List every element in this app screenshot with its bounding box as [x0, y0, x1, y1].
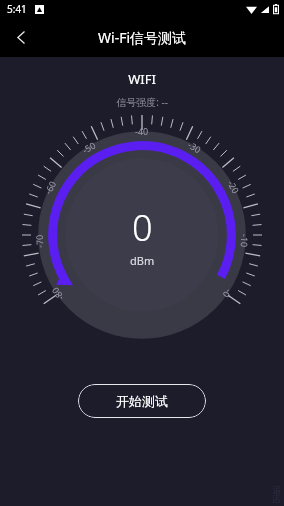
staticText: 5:41: [7, 2, 27, 16]
staticText: -80: [48, 285, 66, 303]
staticText: Wi-Fi信号测试: [98, 28, 187, 47]
staticText: 追 店: [272, 484, 281, 505]
staticText: dBm: [130, 253, 155, 268]
staticText: 开始测试: [116, 393, 168, 409]
staticText: -20: [225, 178, 242, 196]
staticText: 信号强度: --: [0, 95, 284, 109]
staticText: -40: [135, 125, 149, 137]
button[interactable]: 开始测试: [78, 384, 206, 418]
staticText: 0: [132, 203, 153, 252]
staticText: -60: [41, 178, 58, 196]
staticText: -70: [33, 234, 45, 248]
staticText: -50: [80, 138, 98, 156]
staticText: WIFI: [0, 70, 284, 88]
staticText: -0: [220, 287, 235, 301]
staticText: -30: [186, 138, 204, 156]
staticText: -10: [239, 234, 251, 248]
button[interactable]: Back: [0, 18, 42, 57]
